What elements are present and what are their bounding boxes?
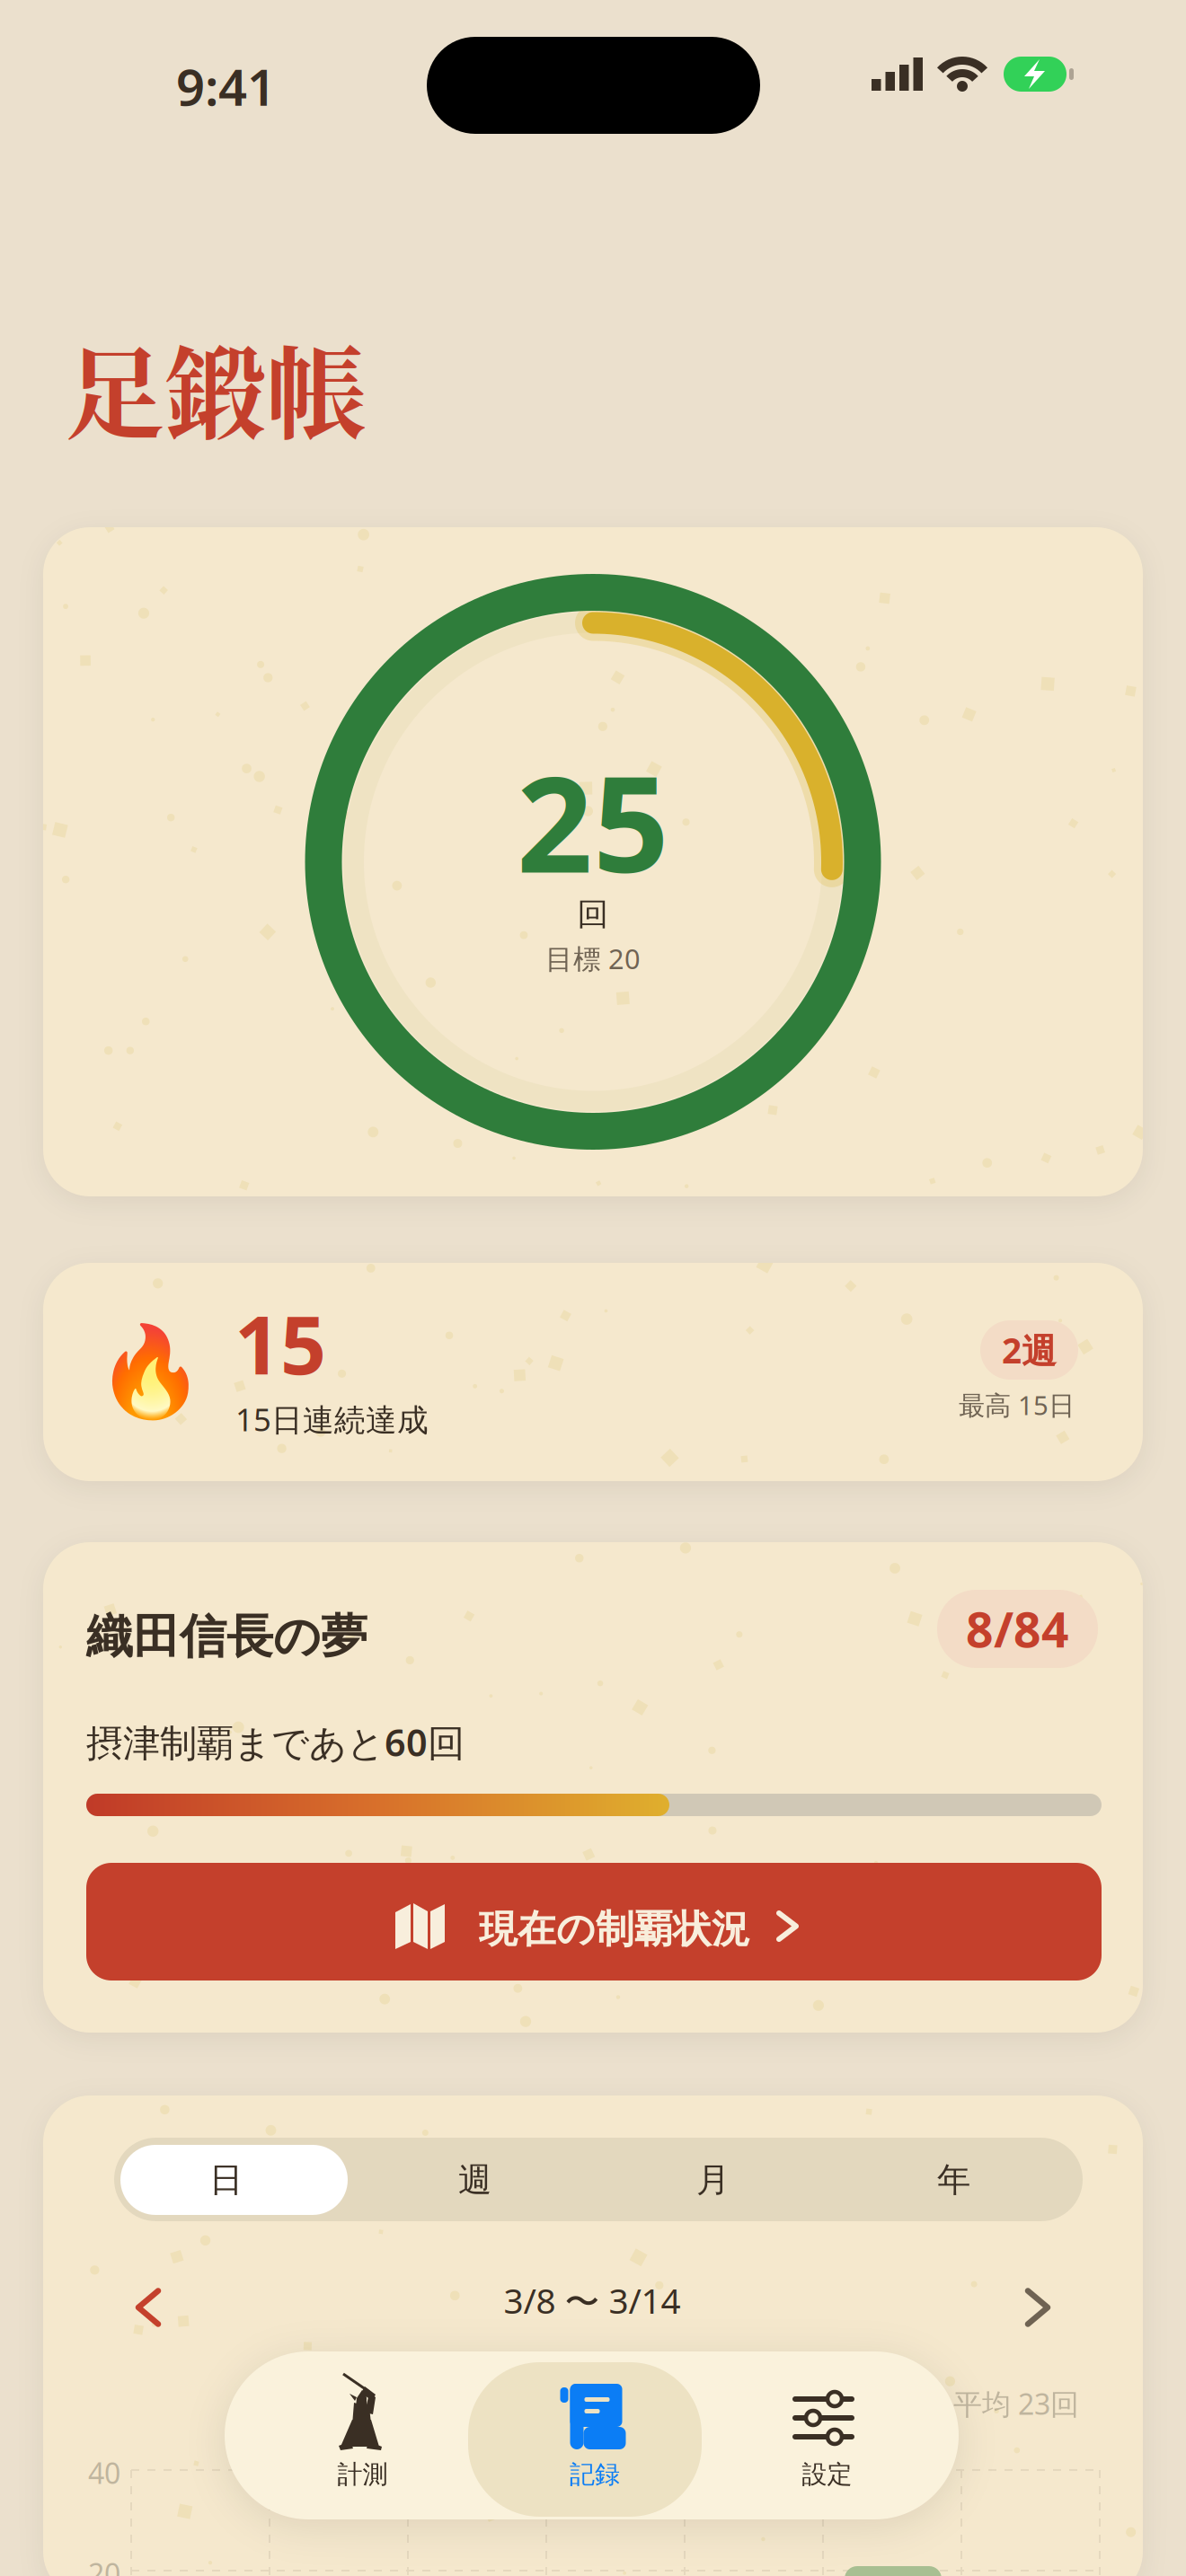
staticText: 15 [235, 1290, 326, 1397]
button[interactable]: 次の週 [996, 2271, 1079, 2344]
staticText: 最高 15日 [959, 1387, 1075, 1422]
button[interactable]: 計測 [248, 2362, 475, 2517]
staticText: 年 [937, 2159, 970, 2201]
button[interactable]: 週 [361, 2145, 589, 2215]
staticText: 15日連続達成 [235, 1398, 429, 1440]
staticText: 週 [458, 2159, 491, 2201]
staticText: 織田信長の夢 [86, 1608, 367, 1665]
staticText: 日 [209, 2159, 243, 2201]
staticText: 設定 [802, 2459, 852, 2490]
button[interactable]: 記録 [468, 2362, 702, 2517]
staticText: 20 [88, 2554, 120, 2576]
button[interactable]: 現在の制覇状況 [86, 1863, 1102, 1981]
staticText: 目標 20 [545, 940, 641, 977]
staticText: 記録 [570, 2459, 620, 2490]
staticText: 計測 [337, 2459, 388, 2490]
staticText: 8/84 [966, 1597, 1069, 1661]
staticText: 2週 [1002, 1327, 1057, 1373]
staticText: 40 [88, 2454, 120, 2492]
staticText: 回 [577, 895, 609, 933]
staticText: 🔥 [95, 1321, 205, 1422]
staticText: 摂津制覇まであと60回 [86, 1717, 465, 1767]
staticText: 足鍛帳 [65, 315, 367, 460]
button[interactable]: 設定 [708, 2362, 935, 2517]
staticText: 月 [696, 2159, 730, 2201]
button[interactable]: 年 [840, 2145, 1067, 2215]
staticText: 9:41 [176, 53, 276, 120]
button[interactable]: 月 [599, 2145, 827, 2215]
button[interactable]: 前の週 [107, 2271, 190, 2344]
staticText: 25 [517, 733, 669, 909]
staticText: 3/8 〜 3/14 [504, 2277, 681, 2323]
staticText: 現在の制覇状況 [479, 1906, 750, 1953]
button[interactable]: 日 [112, 2145, 340, 2215]
staticText: 平均 23回 [953, 2385, 1079, 2423]
